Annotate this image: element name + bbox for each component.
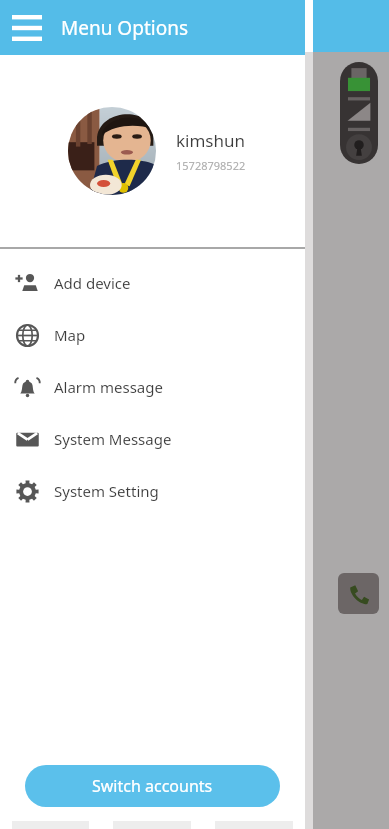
staticText: 15728798522 — [176, 158, 246, 173]
staticText: System Setting — [54, 481, 159, 501]
staticText: Alarm message — [54, 377, 163, 397]
button[interactable]: Alarm message — [0, 361, 305, 413]
button[interactable]: Add device — [0, 257, 305, 309]
staticText: kimshun — [176, 129, 246, 152]
button[interactable]: Call — [338, 573, 379, 614]
button[interactable]: Switch accounts — [25, 765, 280, 807]
staticText: Map — [54, 325, 86, 345]
button[interactable]: System Setting — [0, 465, 305, 517]
staticText: Add device — [54, 273, 131, 293]
button[interactable]: System Message — [0, 413, 305, 465]
staticText: Menu Options — [61, 15, 188, 41]
button[interactable]: Map — [0, 309, 305, 361]
button[interactable]: kimshun — [0, 55, 305, 247]
button[interactable]: Device status — [340, 62, 378, 164]
button[interactable]: Open navigation menu — [3, 4, 51, 52]
staticText: System Message — [54, 429, 172, 449]
staticText: Switch accounts — [92, 775, 213, 797]
